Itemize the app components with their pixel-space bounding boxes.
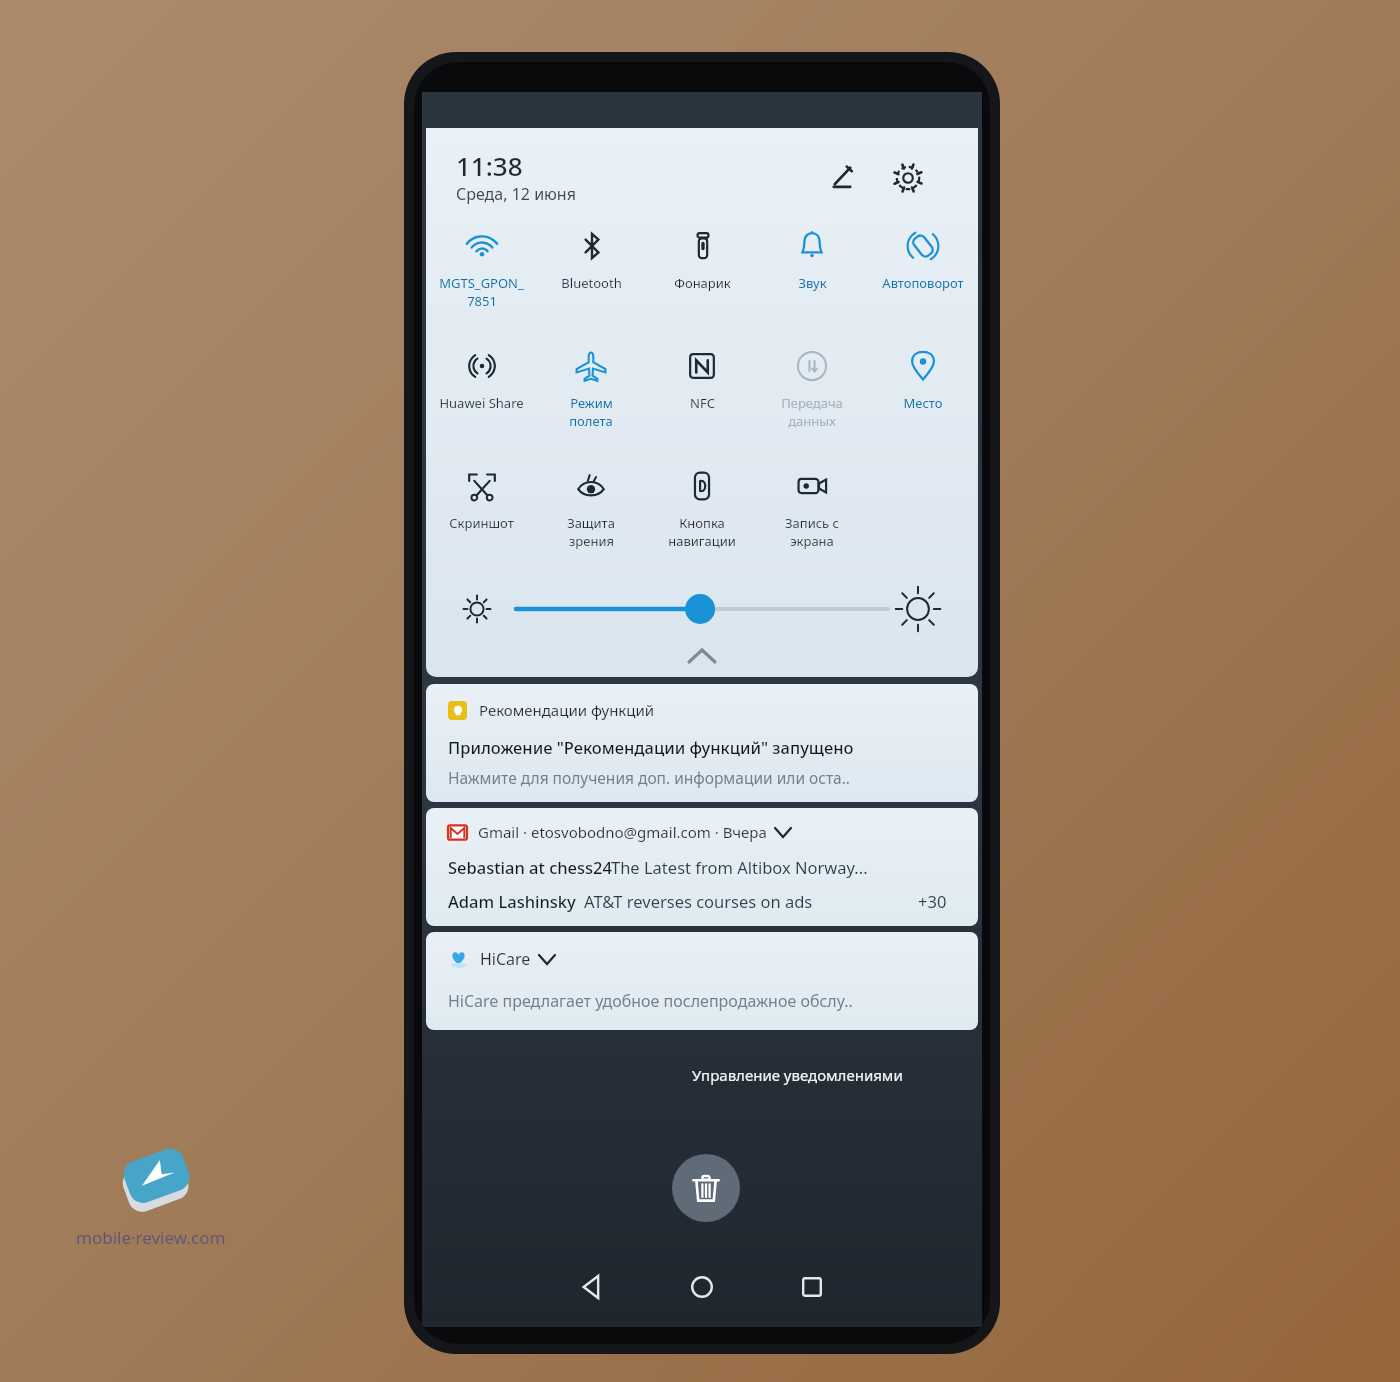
button[interactable]: Запись с [757,464,867,576]
staticText: данных [788,412,836,430]
staticText: HiCare предлагает удобное послепродажное… [448,990,853,1012]
button[interactable]: Gmail · etosvobodno@gmail.com · Вчера [426,808,978,926]
button[interactable]: Назад [562,1263,622,1311]
button[interactable]: Автоповорот [868,224,978,336]
staticText: The Latest from Altibox Norway... [611,856,868,878]
button[interactable]: NFC [647,344,757,456]
staticText: Место [903,394,943,412]
staticText: Автоповорот [882,274,964,292]
staticText: навигации [668,532,736,550]
staticText: Рекомендации функций [479,700,655,720]
staticText: NFC [690,394,715,412]
button[interactable]: Изменить [820,156,864,200]
button[interactable]: Кнопка [647,464,757,576]
staticText: MGTS_GPON_ [439,274,524,292]
staticText: HiCare [480,948,531,970]
staticText: Режим [570,394,613,412]
button[interactable]: MGTS_GPON_ [426,224,536,336]
staticText: Кнопка [679,514,725,532]
button[interactable]: Очистить все уведомления [672,1154,740,1222]
button[interactable]: Звук [757,224,867,336]
staticText: зрения [569,532,614,550]
staticText: Нажмите для получения доп. информации ил… [448,767,851,788]
staticText: 7851 [467,292,497,310]
staticText: 11:38 [456,148,523,183]
staticText: Скриншот [449,514,514,532]
staticText: полета [569,412,613,430]
button[interactable]: Главный экран [672,1263,732,1311]
staticText: Звук [798,274,827,292]
staticText: mobile·review.com [76,1226,226,1249]
button[interactable]: Управление уведомлениями [692,1065,903,1085]
staticText: +30 [918,890,947,912]
staticText: Gmail · etosvobodno@gmail.com · Вчера [478,822,767,842]
staticText: Adam Lashinsky [448,890,581,912]
staticText: Приложение "Рекомендации функций" запуще… [448,736,854,758]
button[interactable]: HiCare [426,932,978,1030]
staticText: Среда, 12 июня [456,183,576,205]
staticText: Sebastian at chess24 [448,856,617,878]
button[interactable]: Настройки [886,156,930,200]
staticText: Защита [567,514,615,532]
staticText: Фонарик [674,274,731,292]
button[interactable]: Скриншот [426,464,536,576]
button[interactable]: Huawei Share [426,344,536,456]
button[interactable]: Свернуть [672,640,732,672]
staticText: Huawei Share [439,394,524,412]
staticText: Bluetooth [561,274,622,292]
staticText: Запись с [785,514,839,532]
button[interactable]: Защита [536,464,646,576]
button[interactable]: Рекомендации функций [426,684,978,802]
button[interactable]: Недавние приложения [782,1263,842,1311]
button[interactable]: Режим [536,344,646,456]
button[interactable]: Место [868,344,978,456]
button[interactable] [512,578,892,640]
staticText: Передача [781,394,843,412]
button[interactable]: Передача [757,344,867,456]
button[interactable]: Bluetooth [536,224,646,336]
staticText: экрана [790,532,834,550]
button[interactable]: Фонарик [647,224,757,336]
staticText: AT&T reverses courses on ads [584,890,813,912]
